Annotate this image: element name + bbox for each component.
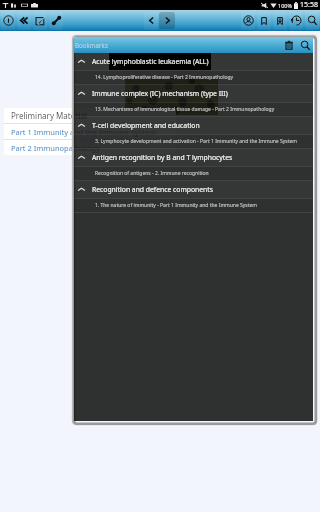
staticText: Antigen recognition by B and T lymphocyt… bbox=[92, 153, 233, 162]
staticText: Preliminary Material bbox=[11, 110, 88, 121]
button[interactable]: Search bookmarks bbox=[297, 37, 313, 53]
staticText: Part 2 Immunopathology bbox=[11, 143, 100, 153]
button[interactable]: Back bbox=[143, 10, 159, 31]
button[interactable]: Search bbox=[304, 10, 320, 31]
staticText: Immune complex (IC) mechanism (type III) bbox=[92, 89, 228, 98]
button[interactable]: Previous chapter bbox=[16, 10, 32, 31]
button[interactable]: T-cell development and education bbox=[74, 117, 313, 134]
button[interactable]: 3. Lymphocyte development and activation… bbox=[74, 135, 313, 148]
button[interactable]: Forward bbox=[159, 12, 175, 29]
button[interactable]: Recognition and defence components bbox=[74, 181, 313, 198]
staticText: 14. Lymphoproliferative disease - Part 2… bbox=[95, 74, 234, 81]
button[interactable]: Immune complex (IC) mechanism (type III) bbox=[74, 85, 313, 102]
button[interactable]: Add bookmark bbox=[272, 10, 288, 31]
button[interactable]: Notes bbox=[32, 10, 48, 31]
button[interactable]: 1. The nature of immunity - Part 1 Immun… bbox=[74, 199, 313, 212]
button[interactable]: History bbox=[288, 10, 304, 31]
staticText: Acute lymphoblastic leukaemia (ALL) bbox=[92, 57, 209, 66]
button[interactable]: Delete bookmarks bbox=[281, 37, 297, 53]
staticText: T-cell development and education bbox=[92, 121, 200, 130]
button[interactable]: 13. Mechanisms of immunological tissue d… bbox=[74, 103, 313, 116]
staticText: Bookmarks bbox=[75, 41, 108, 49]
button[interactable]: Bookmarks bbox=[256, 10, 272, 31]
staticText: Part 1 Immunity and the Immune System bbox=[11, 127, 157, 137]
staticText: 3. Lymphocyte development and activation… bbox=[95, 138, 297, 145]
button[interactable]: 14. Lymphoproliferative disease - Part 2… bbox=[74, 71, 313, 84]
staticText: Recognition and defence components bbox=[92, 185, 214, 194]
staticText: 13. Mechanisms of immunological tissue d… bbox=[95, 106, 275, 113]
button[interactable]: Account bbox=[240, 10, 256, 31]
staticText: 1. The nature of immunity - Part 1 Immun… bbox=[95, 202, 258, 209]
staticText: 100% bbox=[278, 2, 293, 9]
button[interactable]: Links bbox=[48, 10, 64, 31]
staticText: Recognition of antigens - 2. Immune reco… bbox=[95, 170, 209, 177]
button[interactable]: Antigen recognition by B and T lymphocyt… bbox=[74, 149, 313, 166]
button[interactable]: Recognition of antigens - 2. Immune reco… bbox=[74, 167, 313, 180]
staticText: 15:58 bbox=[300, 0, 318, 10]
button[interactable]: Info bbox=[0, 10, 16, 31]
button[interactable]: Acute lymphoblastic leukaemia (ALL) bbox=[74, 53, 313, 70]
